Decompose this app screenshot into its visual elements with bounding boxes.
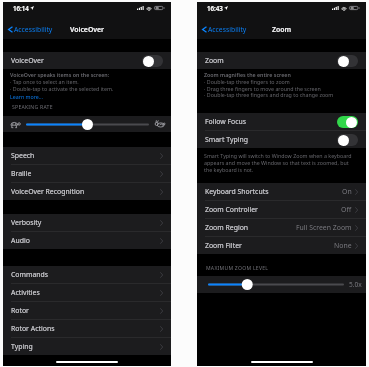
button[interactable]: Commands: [3, 266, 171, 283]
button[interactable]: VoiceOver Recognition: [3, 183, 171, 200]
staticText: Rotor: [11, 306, 29, 315]
staticText: Rotor Actions: [11, 324, 55, 333]
button[interactable]: Braille: [3, 165, 171, 182]
button[interactable]: Zoom Region: [197, 219, 366, 236]
staticText: Full Screen Zoom: [296, 223, 352, 232]
staticText: On: [342, 187, 352, 196]
other: Faster: [154, 120, 165, 128]
button[interactable]: Verbosity: [3, 214, 171, 231]
staticText: VoiceOver speaks items on the screen:: [10, 71, 110, 78]
staticText: VoiceOver: [70, 25, 105, 34]
button[interactable]: Speech: [3, 147, 171, 164]
button[interactable]: Learn more…: [3, 93, 171, 100]
button[interactable]: Rotor: [3, 302, 171, 319]
staticText: VoiceOver: [11, 56, 44, 65]
button[interactable]: Keyboard Shortcuts: [197, 183, 366, 200]
button[interactable]: Switch off: [337, 55, 358, 67]
staticText: Zoom: [272, 25, 292, 34]
staticText: SPEAKING RATE: [12, 104, 171, 111]
staticText: · Double-tap three fingers and drag to c…: [204, 91, 334, 98]
button[interactable]: Audio: [3, 232, 171, 249]
staticText: · Tap once to select an item.: [10, 78, 79, 85]
staticText: MAXIMUM ZOOM LEVEL: [206, 265, 366, 272]
staticText: Learn more…: [10, 93, 43, 100]
button[interactable]: Accessibility: [202, 19, 247, 39]
staticText: Verbosity: [11, 218, 42, 227]
staticText: · Drag three fingers to move around the …: [204, 85, 321, 92]
button[interactable]: Follow Focus: [197, 113, 366, 130]
staticText: 16:43: [207, 4, 223, 12]
button[interactable]: Accessibility: [8, 19, 53, 39]
staticText: Speech: [11, 151, 35, 160]
staticText: None: [334, 241, 352, 250]
staticText: Accessibility: [208, 25, 247, 34]
button[interactable]: Rotor Actions: [3, 320, 171, 337]
button[interactable]: Zoom Controller: [197, 201, 366, 218]
staticText: · Double-tap to activate the selected it…: [10, 85, 114, 92]
button[interactable]: Slider: [208, 279, 344, 290]
staticText: Braille: [11, 169, 32, 178]
button[interactable]: Switch off: [337, 134, 358, 146]
staticText: Zoom Controller: [205, 205, 258, 214]
staticText: Smart Typing: [205, 135, 248, 144]
button[interactable]: Slider: [26, 119, 149, 130]
button[interactable]: Switch off: [142, 55, 163, 67]
staticText: Activities: [11, 288, 40, 297]
staticText: Zoom Filter: [205, 241, 242, 250]
staticText: 16:14: [13, 4, 29, 12]
button[interactable]: Zoom Filter: [197, 237, 366, 254]
staticText: Audio: [11, 236, 30, 245]
button[interactable]: Activities: [3, 284, 171, 301]
staticText: Off: [341, 205, 352, 214]
other: Slower: [10, 121, 21, 128]
button[interactable]: Switch on: [337, 116, 358, 128]
button[interactable]: Zoom: [197, 52, 366, 69]
staticText: Zoom magnifies the entire screen: [204, 71, 291, 78]
staticText: Commands: [11, 270, 49, 279]
button[interactable]: VoiceOver: [3, 52, 171, 69]
staticText: Keyboard Shortcuts: [205, 187, 269, 196]
staticText: VoiceOver Recognition: [11, 187, 85, 196]
staticText: Smart Typing will switch to Window Zoom …: [204, 152, 352, 159]
button[interactable]: Typing: [3, 338, 171, 355]
staticText: 5.0x: [349, 280, 362, 289]
button[interactable]: Smart Typing: [197, 131, 366, 148]
staticText: Follow Focus: [205, 117, 247, 126]
staticText: · Double-tap three fingers to zoom: [204, 78, 290, 85]
staticText: Typing: [11, 342, 33, 351]
staticText: appears and move the Window so that text…: [204, 159, 349, 166]
staticText: Zoom Region: [205, 223, 249, 232]
staticText: Accessibility: [14, 25, 53, 34]
staticText: the keyboard is not.: [204, 166, 254, 173]
staticText: Zoom: [205, 56, 224, 65]
